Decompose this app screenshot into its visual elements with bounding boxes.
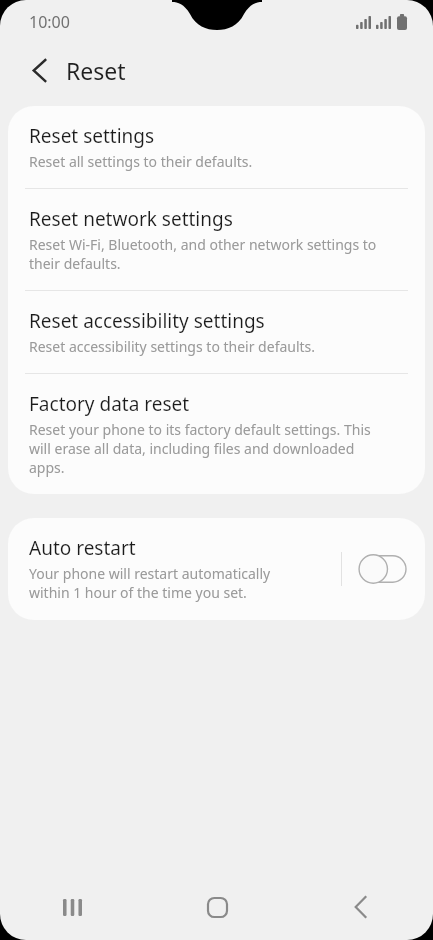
staticText: 10:00 bbox=[29, 11, 70, 33]
button[interactable]: Auto restart bbox=[8, 518, 425, 620]
button[interactable]: Reset settings bbox=[8, 106, 425, 188]
staticText: Reset all settings to their defaults. bbox=[29, 152, 253, 171]
button[interactable]: Back bbox=[289, 874, 433, 940]
staticText: Reset accessibility settings to their de… bbox=[29, 337, 316, 356]
staticText: Reset your phone to its factory default … bbox=[29, 420, 371, 477]
staticText: Your phone will restart automatically wi… bbox=[29, 564, 271, 602]
staticText: Reset network settings bbox=[29, 206, 233, 232]
staticText: Factory data reset bbox=[29, 391, 190, 417]
button[interactable]: Back bbox=[22, 52, 58, 88]
staticText: Reset Wi-Fi, Bluetooth, and other networ… bbox=[29, 235, 377, 273]
staticText: Reset settings bbox=[29, 123, 155, 149]
button[interactable]: Recent apps bbox=[0, 874, 145, 940]
button[interactable]: Home bbox=[145, 874, 289, 940]
button[interactable]: Auto restart toggle, off bbox=[355, 551, 409, 587]
staticText: Reset bbox=[66, 55, 126, 86]
button[interactable]: Factory data reset bbox=[8, 374, 425, 494]
button[interactable]: Reset network settings bbox=[8, 189, 425, 290]
staticText: Reset accessibility settings bbox=[29, 308, 265, 334]
staticText: Auto restart bbox=[29, 535, 136, 561]
button[interactable]: Reset accessibility settings bbox=[8, 291, 425, 373]
